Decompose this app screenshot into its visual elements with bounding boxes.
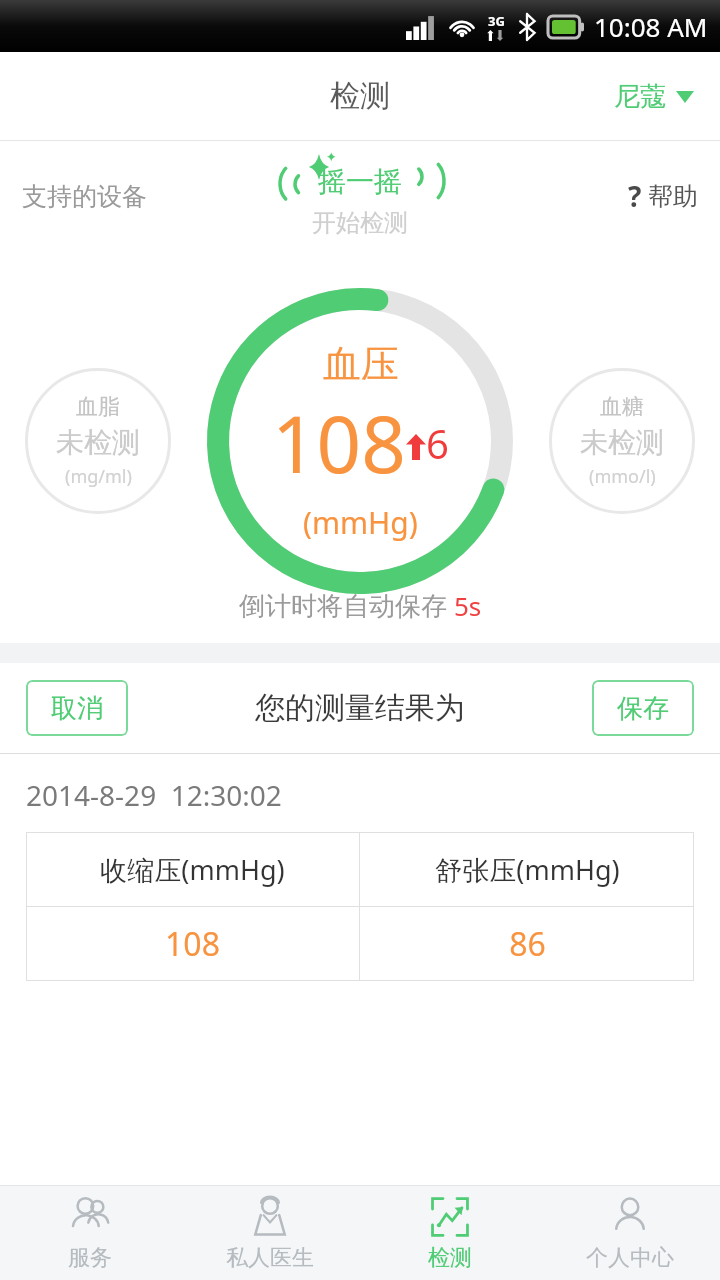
- button[interactable]: 检测: [360, 1186, 540, 1280]
- staticText: 个人中心: [586, 1244, 674, 1272]
- staticText: 5s: [454, 588, 482, 623]
- staticText: 倒计时将自动保存: [239, 587, 454, 623]
- staticText: 检测: [330, 77, 390, 115]
- staticText: 舒张压(mmHg): [435, 851, 620, 888]
- staticText: 86: [509, 922, 546, 966]
- staticText: 帮助: [648, 181, 698, 212]
- staticText: 检测: [428, 1244, 472, 1272]
- staticText: 10:08 AM: [594, 9, 708, 44]
- staticText: 未检测: [580, 425, 664, 460]
- staticText: 血脂: [76, 393, 120, 421]
- staticText: 尼蔻: [614, 80, 666, 113]
- staticText: 血压: [323, 340, 399, 388]
- staticText: 收缩压(mmHg): [100, 851, 285, 888]
- button[interactable]: 支持的设备: [22, 181, 147, 212]
- button[interactable]: 尼蔻: [608, 74, 700, 119]
- staticText: 保存: [617, 692, 669, 725]
- staticText: 3G: [488, 12, 505, 30]
- button[interactable]: 血压: [207, 288, 513, 594]
- staticText: 开始检测: [312, 208, 408, 238]
- staticText: (mmo/l): [589, 464, 656, 489]
- staticText: 血糖: [600, 393, 644, 421]
- button[interactable]: 保存: [592, 680, 694, 736]
- staticText: 108: [165, 922, 220, 966]
- staticText: 未检测: [56, 425, 140, 460]
- button[interactable]: ?: [628, 177, 698, 215]
- staticText: 108: [272, 390, 406, 496]
- button[interactable]: 摇一摇: [260, 154, 460, 238]
- staticText: 私人医生: [226, 1244, 314, 1272]
- staticText: 服务: [68, 1244, 112, 1272]
- button[interactable]: 取消: [26, 680, 128, 736]
- staticText: 2014-8-29 12:30:02: [26, 776, 282, 814]
- staticText: (mmHg): [303, 502, 418, 543]
- button[interactable]: 个人中心: [540, 1186, 720, 1280]
- staticText: 您的测量结果为: [255, 689, 465, 727]
- button[interactable]: 血糖: [549, 368, 695, 514]
- button[interactable]: 服务: [0, 1186, 180, 1280]
- staticText: (mg/ml): [65, 464, 132, 489]
- button[interactable]: 血脂: [25, 368, 171, 514]
- staticText: 摇一摇: [318, 164, 402, 199]
- staticText: ?: [628, 177, 642, 215]
- staticText: 取消: [51, 692, 103, 725]
- button[interactable]: 私人医生: [180, 1186, 360, 1280]
- staticText: 6: [426, 416, 449, 470]
